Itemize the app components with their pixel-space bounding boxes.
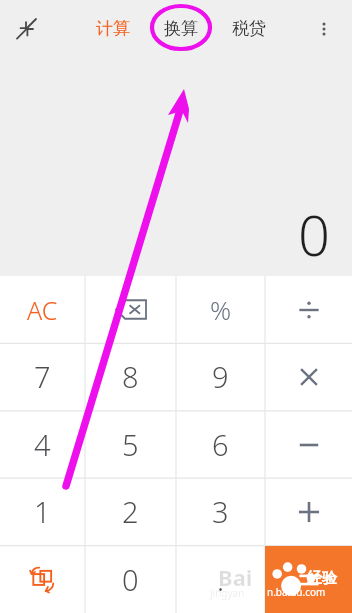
button[interactable]: % <box>176 276 265 343</box>
button[interactable]: 2 <box>85 478 176 545</box>
button[interactable]: 7 <box>0 343 85 410</box>
button[interactable]: 换算 <box>147 8 215 48</box>
button[interactable]: Backspace <box>85 276 176 343</box>
staticText: % <box>210 292 232 327</box>
staticText: 计算 <box>96 18 130 39</box>
staticText: 换算 <box>164 18 198 39</box>
button[interactable]: More options <box>305 10 343 48</box>
staticText: . <box>217 560 225 599</box>
staticText: 1 <box>34 492 51 531</box>
staticText: 8 <box>122 357 139 396</box>
button[interactable]: Equals <box>265 546 352 613</box>
button[interactable]: 0 <box>85 546 176 613</box>
staticText: 经验 <box>307 569 337 588</box>
staticText: n.baidu.com <box>267 585 326 599</box>
button[interactable]: 9 <box>176 343 265 410</box>
staticText: 6 <box>212 425 229 464</box>
button[interactable]: 8 <box>85 343 176 410</box>
staticText: 2 <box>122 492 139 531</box>
button[interactable]: 4 <box>0 411 85 478</box>
button[interactable]: Unit convert <box>0 546 85 613</box>
staticText: 0 <box>122 560 139 599</box>
button[interactable]: 3 <box>176 478 265 545</box>
button[interactable]: 1 <box>0 478 85 545</box>
staticText: 5 <box>122 425 139 464</box>
staticText: 9 <box>212 357 229 396</box>
staticText: AC <box>27 293 58 327</box>
staticText: 4 <box>34 425 51 464</box>
button[interactable]: Plus <box>265 478 352 545</box>
button[interactable]: 5 <box>85 411 176 478</box>
button[interactable]: Divide <box>265 276 352 343</box>
staticText: 7 <box>34 357 51 396</box>
staticText: 0 <box>298 196 330 272</box>
button[interactable]: Multiply <box>265 343 352 410</box>
staticText: Bai <box>218 562 253 592</box>
button[interactable]: Collapse <box>8 10 46 48</box>
button[interactable]: . <box>176 546 265 613</box>
button[interactable]: 税贷 <box>215 8 283 48</box>
staticText: jingyan <box>210 586 245 600</box>
button[interactable]: Minus <box>265 411 352 478</box>
button[interactable]: 计算 <box>79 8 147 48</box>
button[interactable]: 6 <box>176 411 265 478</box>
button[interactable]: AC <box>0 276 85 343</box>
staticText: 税贷 <box>232 18 266 39</box>
staticText: 3 <box>212 492 229 531</box>
